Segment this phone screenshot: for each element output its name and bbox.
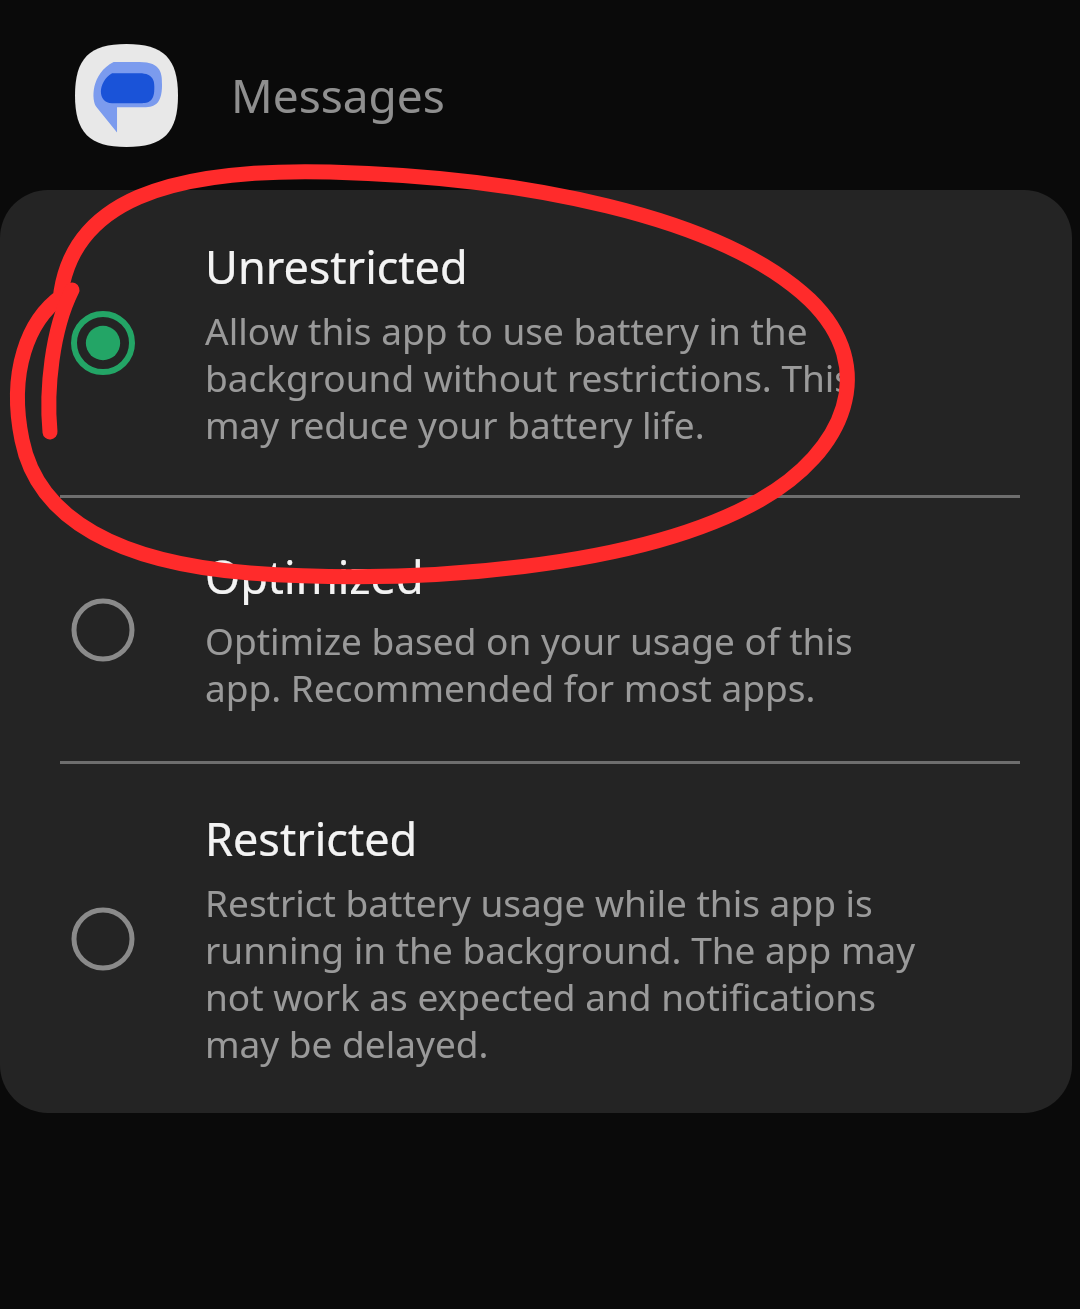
staticText: Restrict battery usage while this app is… <box>205 877 916 1069</box>
button[interactable]: Not selected <box>70 906 136 972</box>
staticText: Allow this app to use battery in the bac… <box>205 305 853 450</box>
staticText: Optimize based on your usage of this app… <box>205 615 853 713</box>
button[interactable]: Not selected <box>0 764 1072 1113</box>
button[interactable]: Not selected <box>70 597 136 663</box>
other: Messages app icon <box>75 44 178 147</box>
button[interactable]: Selected <box>0 190 1072 495</box>
button[interactable]: Selected <box>70 310 136 376</box>
button[interactable]: Not selected <box>0 498 1072 761</box>
staticText: Restricted <box>205 808 418 869</box>
staticText: Optimized <box>205 546 424 607</box>
staticText: Unrestricted <box>205 236 468 297</box>
staticText: Messages <box>231 64 445 127</box>
